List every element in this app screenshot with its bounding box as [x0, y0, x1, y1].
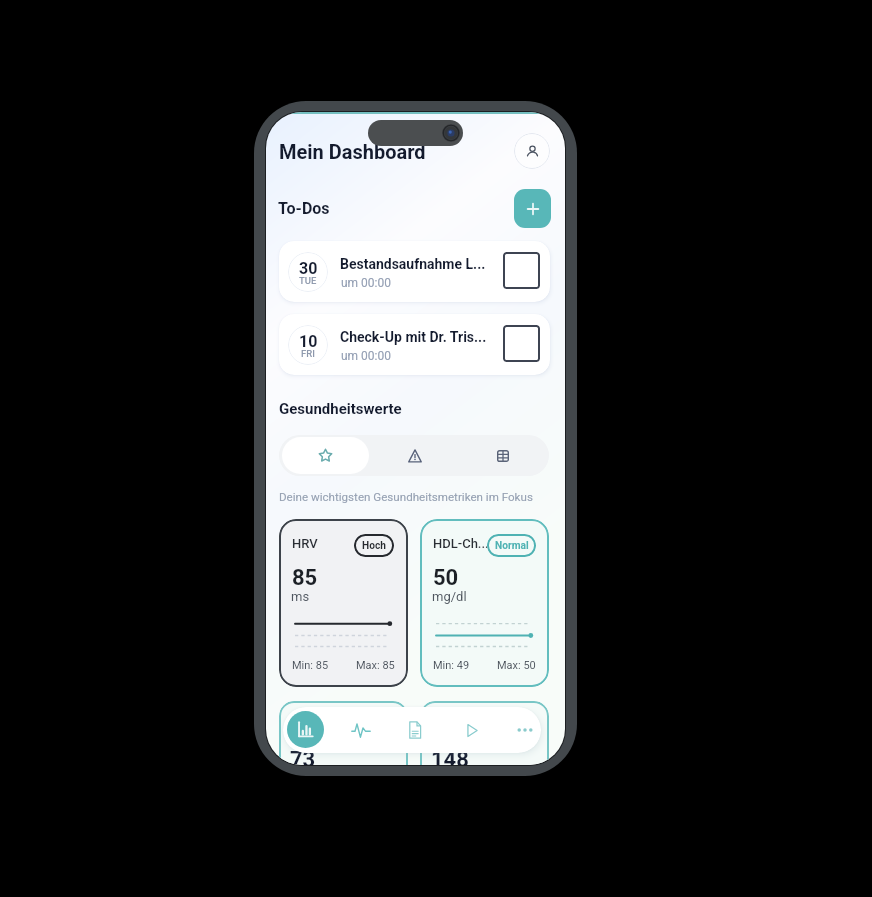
staticText: Hoch [362, 540, 386, 552]
staticText: 10 [299, 332, 318, 351]
button[interactable]: Mark done [503, 325, 540, 362]
staticText: 50 [433, 565, 459, 591]
staticText: 30 [299, 259, 318, 278]
button[interactable]: HDL-Ch... [420, 519, 549, 687]
staticText: Gesundheitswerte [279, 400, 402, 418]
staticText: Min: 49 [433, 659, 470, 672]
button[interactable]: 30 [279, 241, 550, 302]
button[interactable]: Recordings [456, 715, 486, 745]
button[interactable]: Add to-do [514, 189, 551, 228]
staticText: mg/dl [432, 589, 467, 604]
staticText: um 00:00 [341, 276, 391, 290]
button[interactable]: Table [486, 439, 519, 472]
staticText: To-Dos [278, 199, 330, 218]
button[interactable]: 73 [279, 701, 408, 765]
button[interactable]: Documents [400, 715, 430, 745]
staticText: ms [291, 589, 310, 604]
button[interactable]: 10 [279, 314, 550, 375]
staticText: 148 [431, 747, 469, 765]
button[interactable]: Profile [514, 133, 550, 169]
button[interactable]: 148 [420, 701, 549, 765]
staticText: 73 [290, 747, 316, 765]
staticText: HDL-Ch... [433, 536, 489, 551]
button[interactable]: Warnings [398, 439, 431, 472]
button[interactable]: Favourites [282, 437, 369, 474]
staticText: Normal [495, 540, 529, 552]
button[interactable]: HRV [279, 519, 408, 687]
staticText: Min: 85 [292, 659, 329, 672]
staticText: Check-Up mit Dr. Tris... [340, 329, 487, 345]
staticText: 85 [292, 565, 318, 591]
button[interactable]: More [510, 715, 540, 745]
staticText: TUE [299, 275, 317, 286]
staticText: Mein Dashboard [279, 140, 426, 163]
staticText: HRV [292, 536, 318, 551]
staticText: Max: 50 [497, 659, 536, 672]
button[interactable]: Mark done [503, 252, 540, 289]
button[interactable]: Vitals [346, 715, 376, 745]
staticText: FRI [301, 348, 315, 359]
staticText: Max: 85 [356, 659, 395, 672]
button[interactable]: Dashboard [287, 711, 324, 748]
staticText: Deine wichtigsten Gesundheitsmetriken im… [279, 490, 533, 504]
staticText: um 00:00 [341, 349, 391, 363]
staticText: Bestandsaufnahme L... [340, 256, 486, 272]
